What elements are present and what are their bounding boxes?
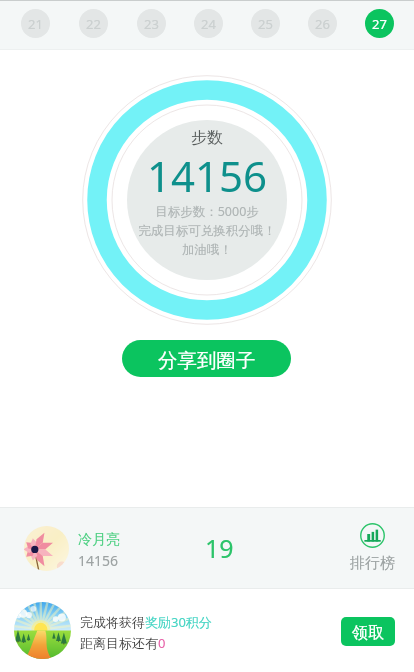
staticText: 14156 bbox=[78, 551, 119, 570]
button[interactable]: 23 bbox=[122, 0, 180, 50]
staticText: 19 bbox=[205, 531, 234, 565]
staticText: 27 bbox=[372, 15, 387, 33]
staticText: 21 bbox=[28, 15, 43, 33]
staticText: 距离目标还有0 bbox=[80, 634, 166, 652]
staticText: 26 bbox=[315, 15, 330, 33]
staticText: 分享到圈子 bbox=[158, 348, 256, 373]
button[interactable]: 21 bbox=[6, 0, 64, 50]
button[interactable]: 22 bbox=[64, 0, 122, 50]
button[interactable]: 24 bbox=[180, 0, 237, 50]
button[interactable]: 分享到圈子 bbox=[122, 340, 291, 377]
staticText: 22 bbox=[86, 15, 101, 33]
button[interactable]: 27 bbox=[351, 0, 408, 50]
button[interactable]: 领取 bbox=[341, 617, 395, 646]
staticText: 14156 bbox=[147, 147, 268, 204]
staticText: 排行榜 bbox=[350, 554, 395, 573]
button[interactable]: 25 bbox=[237, 0, 294, 50]
staticText: 领取 bbox=[352, 623, 384, 643]
staticText: 冷月亮 bbox=[78, 531, 120, 549]
staticText: 目标步数：5000步 完成目标可兑换积分哦！ 加油哦！ bbox=[138, 203, 276, 258]
button[interactable]: 排行榜 bbox=[344, 523, 400, 573]
staticText: 23 bbox=[144, 15, 159, 33]
staticText: 完成将获得奖励30积分 bbox=[80, 613, 212, 631]
staticText: 25 bbox=[258, 15, 273, 33]
staticText: 步数 bbox=[191, 128, 223, 148]
staticText: 24 bbox=[201, 15, 216, 33]
button[interactable]: 冷月亮 bbox=[0, 507, 414, 589]
button[interactable]: 26 bbox=[294, 0, 351, 50]
